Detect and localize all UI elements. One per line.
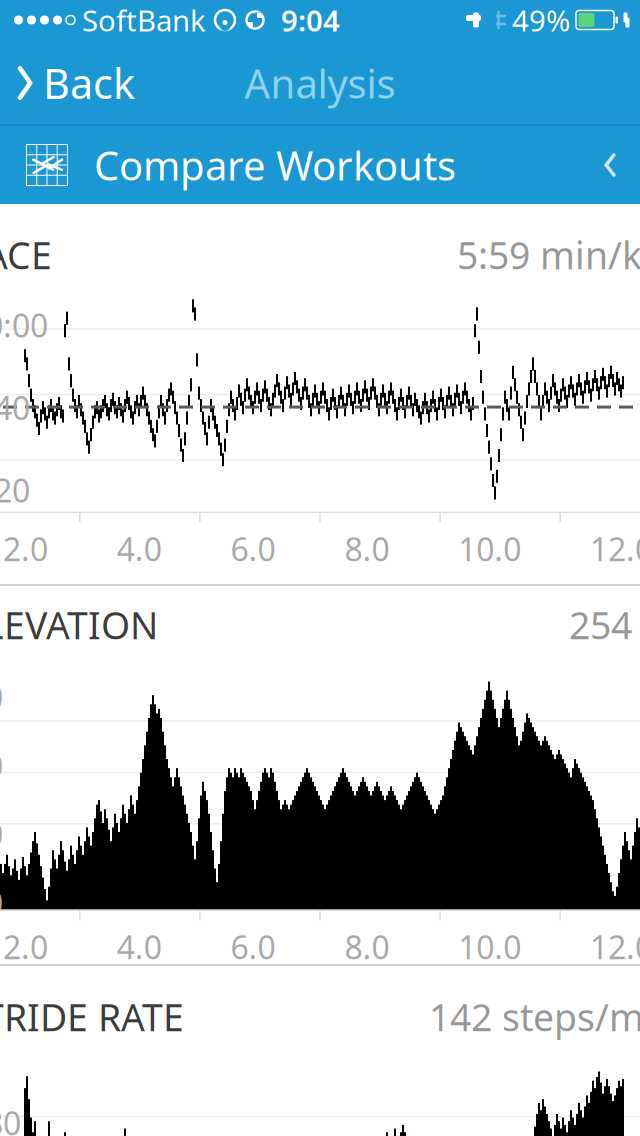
staticText: 9:04 bbox=[281, 0, 340, 39]
staticText: 20 bbox=[0, 812, 3, 855]
staticText: 2.0 bbox=[3, 528, 48, 570]
staticText: 49% bbox=[512, 0, 570, 39]
staticText: 6.0 bbox=[231, 925, 276, 968]
staticText: 8.0 bbox=[344, 925, 389, 968]
staticText: STRIDE RATE bbox=[0, 992, 184, 1042]
staticText: Back bbox=[43, 56, 135, 110]
button[interactable]: Back bbox=[0, 46, 135, 120]
staticText: 254 m bbox=[569, 600, 640, 650]
staticText: SoftBank bbox=[82, 0, 206, 39]
staticText: 12.0 bbox=[590, 528, 640, 570]
staticText: 5:59 min/km bbox=[457, 230, 640, 280]
staticText: 10:00 bbox=[0, 304, 48, 346]
staticText: Compare Workouts bbox=[94, 138, 456, 191]
staticText: 3:20 bbox=[0, 469, 30, 511]
staticText: 6.0 bbox=[231, 528, 276, 570]
staticText: Analysis bbox=[244, 56, 395, 109]
staticText: 12.0 bbox=[590, 925, 640, 968]
staticText: 30 bbox=[0, 744, 3, 786]
staticText: 6:40 bbox=[0, 386, 30, 429]
staticText: 10.0 bbox=[458, 528, 521, 570]
staticText: 4.0 bbox=[117, 925, 162, 968]
staticText: 180 bbox=[0, 1102, 21, 1136]
staticText: 142 steps/min bbox=[429, 992, 640, 1042]
staticText: 8.0 bbox=[344, 528, 389, 570]
staticText: ELEVATION bbox=[0, 600, 158, 650]
staticText: PACE bbox=[0, 230, 52, 280]
staticText: 40 bbox=[0, 676, 3, 718]
button[interactable]: Compare Workouts bbox=[0, 126, 640, 204]
staticText: 2.0 bbox=[3, 925, 48, 968]
staticText: 4.0 bbox=[117, 528, 162, 570]
staticText: 10.0 bbox=[458, 925, 521, 968]
staticText: 10 bbox=[0, 881, 3, 923]
